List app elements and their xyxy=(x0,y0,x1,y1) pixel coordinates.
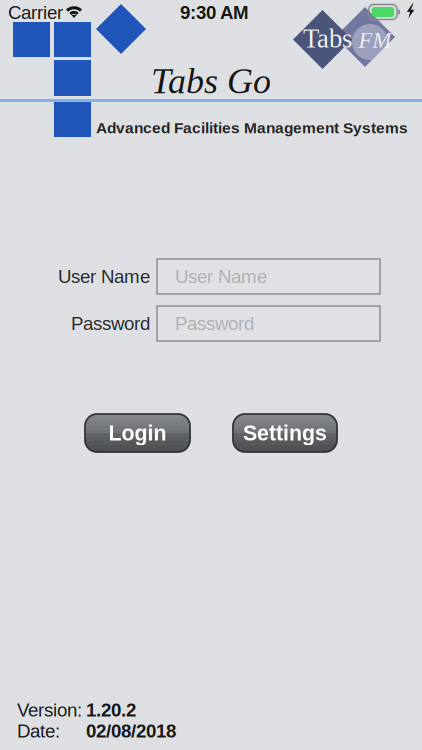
staticText: 9:30 AM xyxy=(180,2,249,23)
staticText: Tabs Go xyxy=(151,61,271,101)
staticText: 1.20.2 xyxy=(86,700,136,720)
staticText: Date: xyxy=(17,721,60,741)
staticText: Settings xyxy=(243,421,327,445)
button[interactable]: Settings xyxy=(233,414,337,452)
staticText: Tabs xyxy=(303,24,352,53)
staticText: 02/08/2018 xyxy=(86,721,176,741)
staticText: User Name xyxy=(58,266,150,287)
button[interactable]: User Name xyxy=(157,259,380,294)
staticText: Version: xyxy=(17,700,82,720)
staticText: Password xyxy=(175,313,254,334)
button[interactable]: Password xyxy=(157,306,380,341)
staticText: User Name xyxy=(175,266,267,287)
staticText: Login xyxy=(108,421,166,445)
staticText: Password xyxy=(71,313,150,334)
button[interactable]: Login xyxy=(85,414,190,452)
staticText: Carrier xyxy=(8,2,63,23)
staticText: Advanced Facilities Management Systems xyxy=(96,119,408,137)
staticText: FM xyxy=(358,27,391,52)
